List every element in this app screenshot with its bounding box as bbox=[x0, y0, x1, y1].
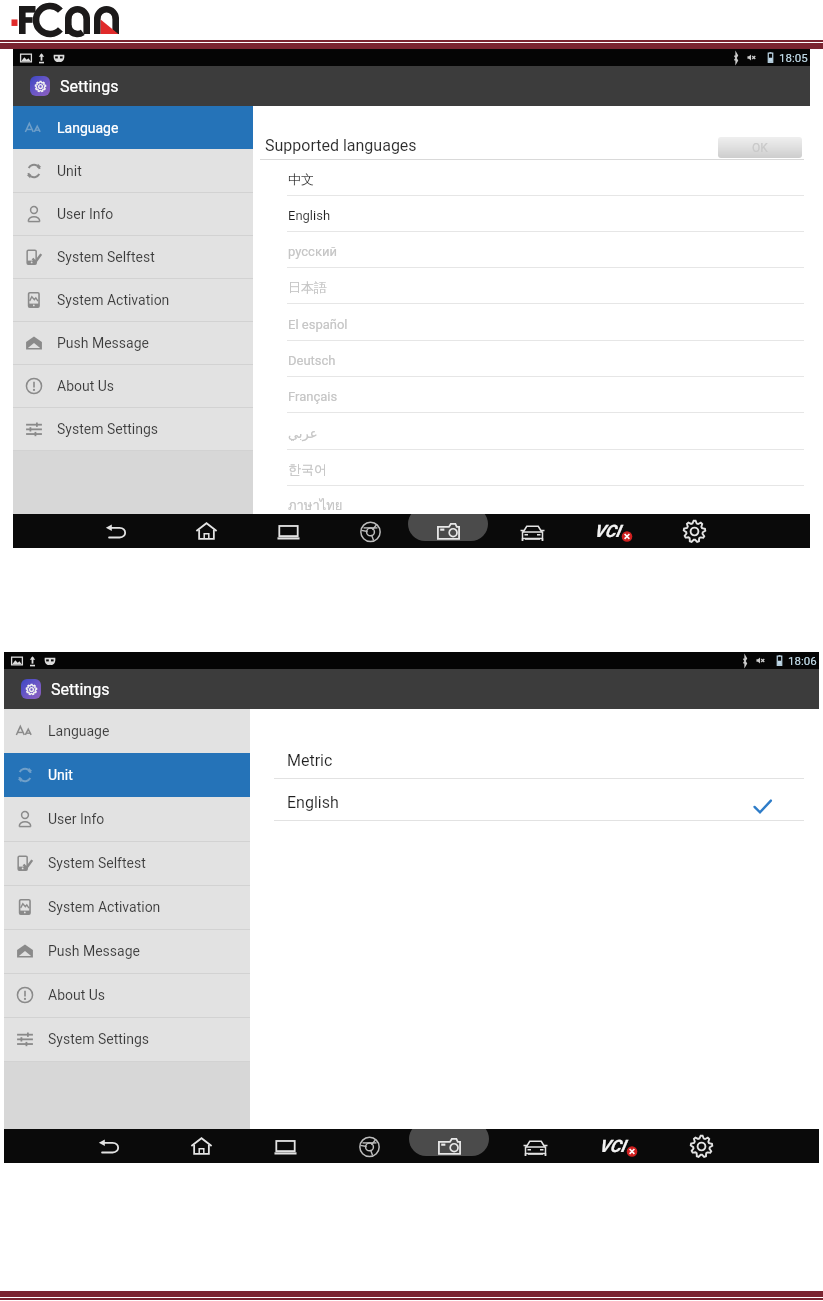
button[interactable]: Vehicle bbox=[509, 514, 555, 548]
staticText: Language bbox=[57, 120, 119, 136]
staticText: ภาษาไทย bbox=[288, 495, 343, 516]
staticText: 한국어 bbox=[288, 461, 327, 477]
staticText: Language bbox=[48, 723, 110, 739]
button[interactable]: System Activation bbox=[4, 885, 250, 929]
staticText: 18:05 bbox=[779, 51, 808, 64]
button[interactable]: 日本語 bbox=[253, 268, 810, 304]
staticText: Deutsch bbox=[288, 353, 336, 368]
button[interactable]: System Settings bbox=[4, 1017, 250, 1061]
button[interactable]: Settings bbox=[671, 514, 717, 548]
button[interactable]: Recents bbox=[265, 514, 311, 548]
button[interactable]: Push Message bbox=[13, 321, 253, 364]
staticText: About Us bbox=[48, 987, 106, 1003]
staticText: User Info bbox=[57, 206, 114, 222]
button[interactable]: Unit bbox=[4, 753, 250, 797]
staticText: Push Message bbox=[57, 335, 149, 351]
button[interactable]: Browser bbox=[346, 1129, 392, 1163]
button[interactable]: About Us bbox=[4, 973, 250, 1017]
staticText: 18:06 bbox=[788, 654, 817, 667]
staticText: El español bbox=[288, 317, 348, 332]
button[interactable]: Français bbox=[253, 377, 810, 413]
button[interactable]: About Us bbox=[13, 364, 253, 407]
button[interactable]: English bbox=[253, 196, 810, 232]
staticText: VCI bbox=[599, 1136, 626, 1156]
staticText: System Selftest bbox=[57, 249, 155, 265]
button[interactable]: English bbox=[250, 779, 819, 821]
staticText: About Us bbox=[57, 378, 115, 394]
staticText: Settings bbox=[60, 77, 119, 96]
staticText: User Info bbox=[48, 811, 105, 827]
button[interactable]: Camera bbox=[425, 514, 471, 548]
staticText: System Activation bbox=[48, 899, 161, 915]
staticText: русский bbox=[288, 244, 337, 259]
button[interactable]: User Info bbox=[4, 797, 250, 841]
staticText: Metric bbox=[287, 751, 333, 770]
staticText: Supported languages bbox=[265, 136, 417, 155]
staticText: VCI bbox=[594, 521, 621, 541]
button[interactable]: 中文 bbox=[253, 160, 810, 196]
button[interactable]: Vehicle bbox=[512, 1129, 558, 1163]
button[interactable]: Settings bbox=[4, 669, 819, 709]
button[interactable]: Home bbox=[183, 514, 229, 548]
button[interactable]: System Selftest bbox=[4, 841, 250, 885]
button[interactable]: 한국어 bbox=[253, 450, 810, 486]
staticText: System Settings bbox=[48, 1031, 150, 1047]
staticText: Settings bbox=[51, 680, 110, 699]
button[interactable]: OK bbox=[718, 137, 802, 158]
staticText: System Settings bbox=[57, 421, 159, 437]
button[interactable]: Home bbox=[178, 1129, 224, 1163]
button[interactable]: عربي bbox=[253, 414, 810, 450]
button[interactable]: System Settings bbox=[13, 407, 253, 450]
button[interactable]: System Selftest bbox=[13, 235, 253, 278]
staticText: English bbox=[287, 793, 339, 812]
button[interactable]: VCI status bbox=[590, 1129, 646, 1163]
button[interactable]: Metric bbox=[250, 737, 819, 779]
button[interactable]: Camera bbox=[426, 1129, 472, 1163]
button[interactable]: Screenshot bbox=[409, 1129, 489, 1156]
button[interactable]: User Info bbox=[13, 192, 253, 235]
staticText: 中文 bbox=[288, 171, 314, 187]
staticText: Unit bbox=[48, 767, 73, 783]
button[interactable]: VCI status bbox=[585, 514, 641, 548]
button[interactable]: Recents bbox=[262, 1129, 308, 1163]
button[interactable]: Settings bbox=[13, 66, 810, 106]
button[interactable]: ภาษาไทย bbox=[253, 486, 810, 522]
button[interactable]: Settings bbox=[678, 1129, 724, 1163]
staticText: System Activation bbox=[57, 292, 170, 308]
button[interactable]: System Activation bbox=[13, 278, 253, 321]
button[interactable]: Back bbox=[85, 1129, 131, 1163]
staticText: Français bbox=[288, 389, 338, 404]
staticText: 日本語 bbox=[288, 279, 327, 295]
button[interactable]: Screenshot bbox=[408, 514, 488, 541]
button[interactable]: Back bbox=[92, 514, 138, 548]
button[interactable]: Deutsch bbox=[253, 341, 810, 377]
button[interactable]: Language bbox=[4, 709, 250, 753]
button[interactable]: Browser bbox=[347, 514, 393, 548]
button[interactable]: Push Message bbox=[4, 929, 250, 973]
staticText: Push Message bbox=[48, 943, 140, 959]
staticText: English bbox=[288, 208, 331, 223]
staticText: System Selftest bbox=[48, 855, 146, 871]
button[interactable]: El español bbox=[253, 305, 810, 341]
staticText: عربي bbox=[288, 426, 318, 441]
button[interactable]: Language bbox=[13, 106, 253, 149]
staticText: Unit bbox=[57, 163, 82, 179]
button[interactable]: Unit bbox=[13, 149, 253, 192]
staticText: OK bbox=[752, 141, 768, 155]
button[interactable]: русский bbox=[253, 232, 810, 268]
